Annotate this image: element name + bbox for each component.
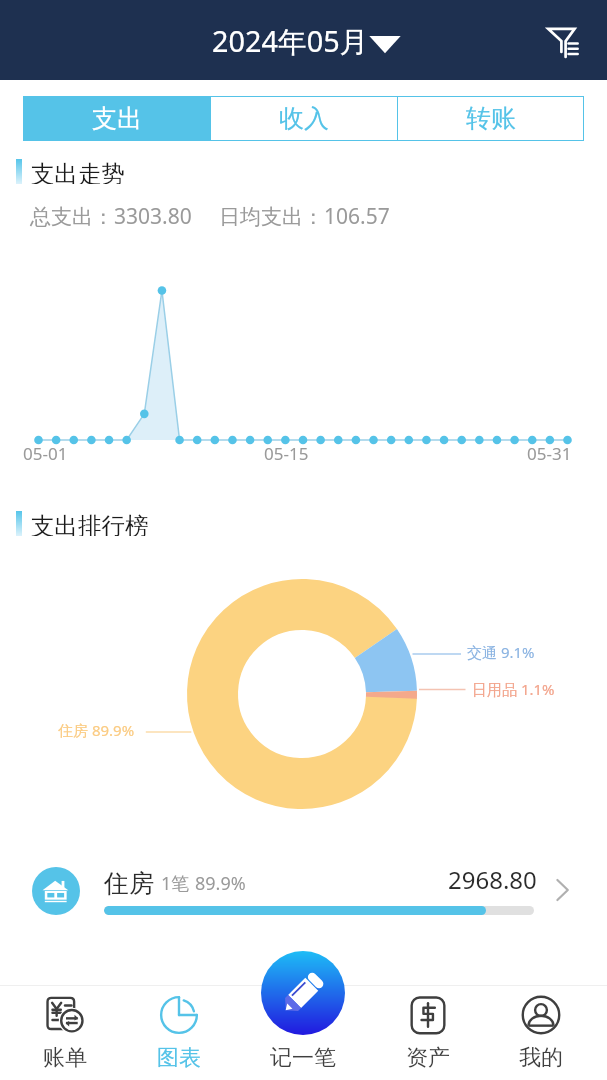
staticText: 1笔 xyxy=(161,871,190,896)
button[interactable]: 账单 xyxy=(17,986,113,1080)
button[interactable]: 收入 xyxy=(211,96,397,141)
staticText: 日均支出：106.57 xyxy=(219,202,390,231)
button[interactable]: Add record xyxy=(261,951,345,1035)
staticText: 支出排行榜 xyxy=(31,511,149,536)
staticText: 图表 xyxy=(157,1044,201,1072)
staticText: 支出 xyxy=(92,103,142,134)
staticText: 89.9% xyxy=(195,871,246,896)
staticText: 资产 xyxy=(406,1044,450,1072)
staticText: 住房 xyxy=(104,868,154,899)
button[interactable]: 转账 xyxy=(398,96,584,141)
button[interactable]: 记一笔 xyxy=(250,986,355,1080)
staticText: 支出走势 xyxy=(31,159,125,184)
staticText: 2968.80 xyxy=(448,863,537,896)
staticText: 05-01 xyxy=(23,442,68,465)
button[interactable]: 住房 xyxy=(0,850,607,930)
button[interactable]: 资产 xyxy=(380,986,476,1080)
button[interactable]: 支出 xyxy=(23,96,210,141)
button[interactable]: Filter xyxy=(540,20,584,64)
staticText: 收入 xyxy=(279,103,329,134)
staticText: 2024年05月 xyxy=(212,21,369,60)
staticText: 记一笔 xyxy=(270,1044,336,1072)
staticText: 我的 xyxy=(519,1044,563,1072)
button[interactable]: 我的 xyxy=(493,986,589,1080)
button[interactable]: 图表 xyxy=(131,986,227,1080)
staticText: 账单 xyxy=(43,1044,87,1072)
staticText: 日用品 1.1% xyxy=(472,679,555,699)
staticText: 05-31 xyxy=(527,442,572,465)
staticText: 住房 89.9% xyxy=(58,720,135,740)
staticText: 转账 xyxy=(466,103,516,134)
staticText: 交通 9.1% xyxy=(467,642,535,662)
staticText: 总支出：3303.80 xyxy=(30,202,192,231)
staticText: 05-15 xyxy=(264,442,309,465)
button[interactable]: 2024年05月 xyxy=(212,21,401,60)
